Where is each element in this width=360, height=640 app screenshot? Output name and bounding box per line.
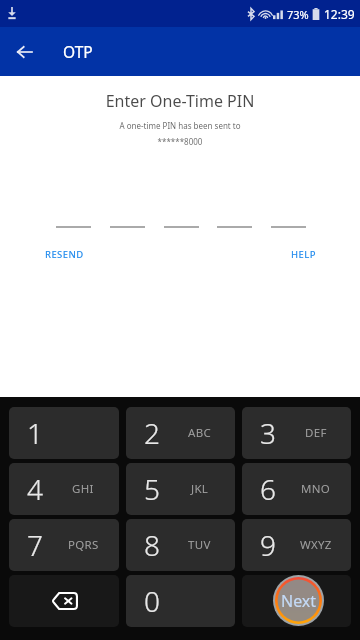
- staticText: 1: [27, 414, 43, 452]
- staticText: A one-time PIN has been sent to: [0, 120, 360, 131]
- button[interactable]: HELP: [287, 245, 320, 264]
- staticText: 73%: [287, 7, 309, 22]
- staticText: MNO: [301, 481, 331, 497]
- staticText: JKL: [191, 481, 209, 497]
- staticText: 3: [260, 414, 276, 452]
- button[interactable]: Backspace: [9, 575, 119, 627]
- staticText: 12:39: [324, 6, 355, 22]
- staticText: 0: [144, 582, 160, 620]
- button[interactable]: 8: [126, 519, 235, 571]
- button[interactable]: 6: [242, 463, 351, 515]
- button[interactable]: 2: [126, 407, 235, 459]
- staticText: TUV: [188, 537, 211, 553]
- staticText: OTP: [63, 41, 93, 62]
- button[interactable]: RESEND: [41, 245, 88, 264]
- staticText: HELP: [291, 248, 316, 261]
- staticText: Enter One-Time PIN: [0, 90, 360, 112]
- staticText: GHI: [72, 481, 94, 497]
- staticText: ******8000: [0, 136, 360, 147]
- staticText: WXYZ: [300, 537, 332, 553]
- staticText: 5: [144, 470, 160, 508]
- staticText: ABC: [188, 425, 211, 441]
- button[interactable]: Next: [242, 575, 351, 627]
- staticText: 4: [27, 470, 43, 508]
- button[interactable]: 0: [126, 575, 235, 627]
- button[interactable]: 4: [9, 463, 119, 515]
- button[interactable]: Back: [0, 28, 48, 76]
- staticText: 6: [260, 470, 276, 508]
- button[interactable]: 9: [242, 519, 351, 571]
- button[interactable]: 3: [242, 407, 351, 459]
- staticText: 8: [144, 526, 160, 564]
- staticText: DEF: [305, 425, 327, 441]
- staticText: 7: [27, 526, 43, 564]
- staticText: Next: [281, 590, 317, 612]
- staticText: PQRS: [68, 537, 99, 553]
- button[interactable]: 5: [126, 463, 235, 515]
- staticText: 9: [260, 526, 276, 564]
- staticText: RESEND: [45, 248, 84, 261]
- button[interactable]: 7: [9, 519, 119, 571]
- button[interactable]: 1: [9, 407, 119, 459]
- staticText: 2: [144, 414, 160, 452]
